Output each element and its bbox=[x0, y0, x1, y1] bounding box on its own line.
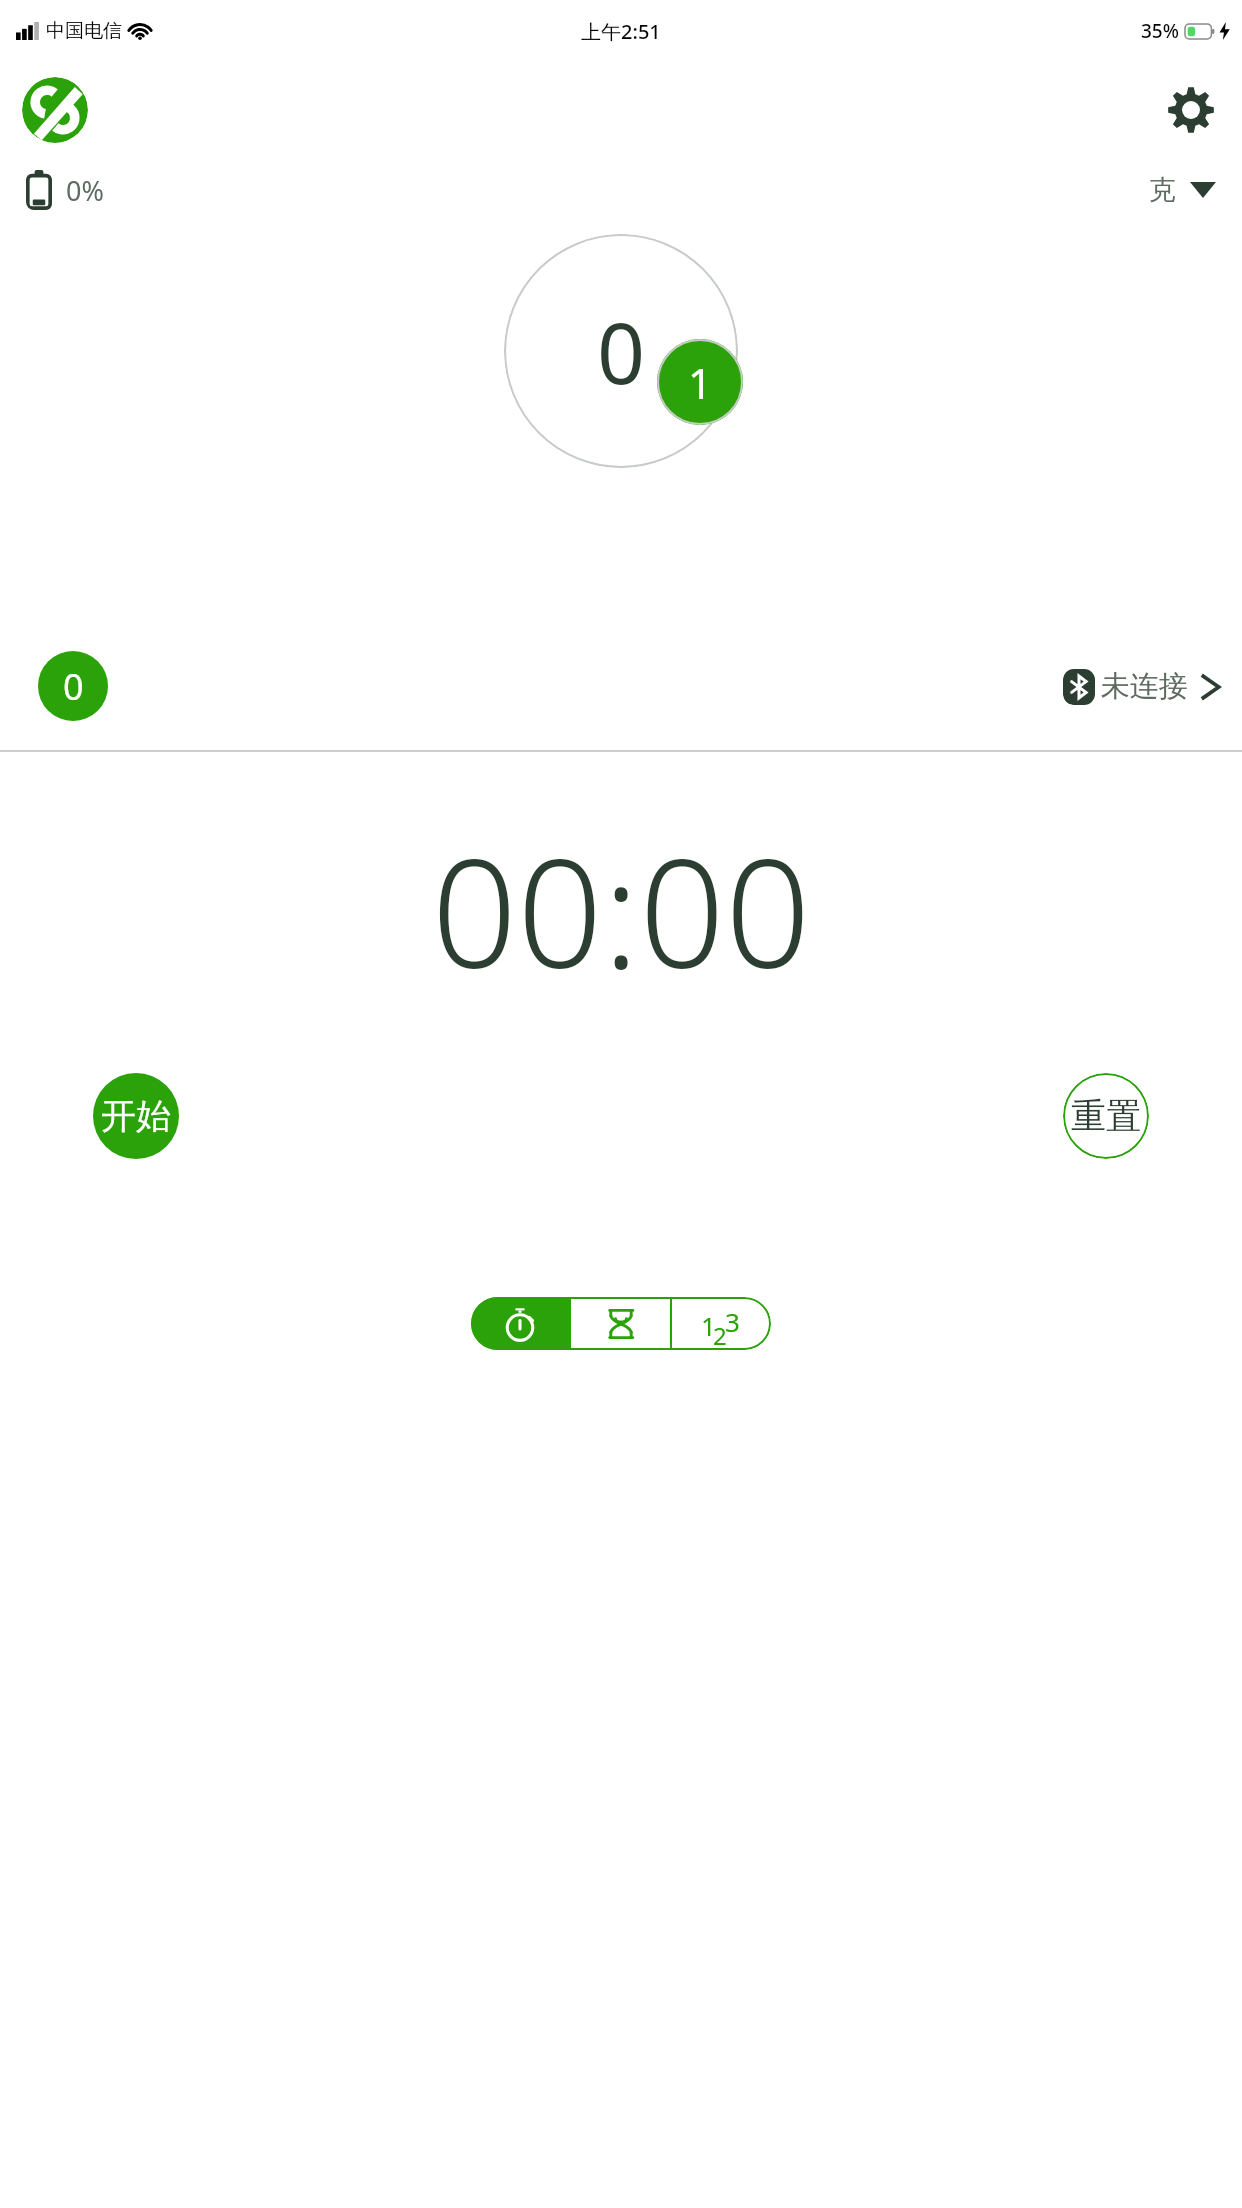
staticText: 3 bbox=[725, 1304, 740, 1339]
button[interactable]: Timer bbox=[571, 1297, 670, 1350]
staticText: 0% bbox=[66, 172, 104, 209]
staticText: 0 bbox=[597, 294, 646, 408]
button[interactable]: Stopwatch bbox=[471, 1297, 569, 1350]
staticText: 2 bbox=[713, 1319, 727, 1350]
button[interactable]: 克 bbox=[1149, 173, 1216, 207]
button[interactable]: 未连接 bbox=[1063, 668, 1222, 705]
button[interactable]: 开始 bbox=[93, 1073, 179, 1159]
staticText: 上午2:51 bbox=[581, 18, 661, 45]
button[interactable]: 0 bbox=[504, 234, 738, 468]
staticText: 未连接 bbox=[1101, 668, 1188, 705]
staticText: 1 bbox=[701, 1308, 716, 1343]
button[interactable]: Counter bbox=[672, 1297, 771, 1350]
staticText: 中国电信 bbox=[46, 19, 122, 43]
staticText: 重置 bbox=[1071, 1094, 1141, 1138]
button[interactable]: 1 bbox=[657, 339, 743, 425]
staticText: 开始 bbox=[101, 1094, 171, 1138]
staticText: 1 bbox=[688, 354, 713, 411]
button[interactable]: Logo bbox=[22, 77, 88, 143]
button[interactable]: 重置 bbox=[1063, 1073, 1149, 1159]
button[interactable]: 0 bbox=[38, 651, 108, 721]
staticText: 0 bbox=[63, 662, 84, 711]
button[interactable]: 0% bbox=[26, 170, 104, 210]
staticText: 35% bbox=[1141, 18, 1179, 44]
button[interactable]: Settings bbox=[1162, 81, 1220, 139]
staticText: 00:00 bbox=[431, 808, 811, 1012]
staticText: 克 bbox=[1149, 173, 1176, 207]
